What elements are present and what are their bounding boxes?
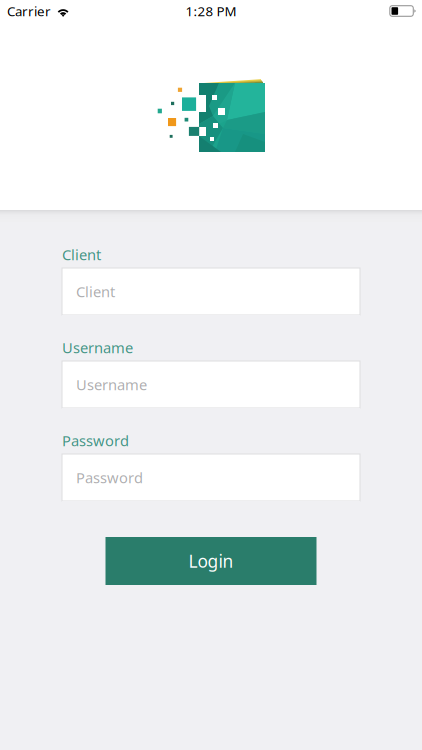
staticText: 1:28 PM (185, 2, 236, 20)
button[interactable]: Client (62, 268, 360, 315)
button[interactable]: Password (62, 454, 360, 501)
button[interactable]: Login (105, 537, 316, 585)
button[interactable]: Username (62, 361, 360, 408)
staticText: Username (62, 337, 133, 357)
staticText: Login (188, 549, 233, 573)
staticText: Password (62, 430, 129, 450)
staticText: Username (76, 374, 147, 394)
staticText: Carrier (7, 2, 51, 20)
staticText: Client (62, 244, 101, 264)
staticText: Password (76, 467, 143, 487)
staticText: Client (76, 281, 115, 301)
